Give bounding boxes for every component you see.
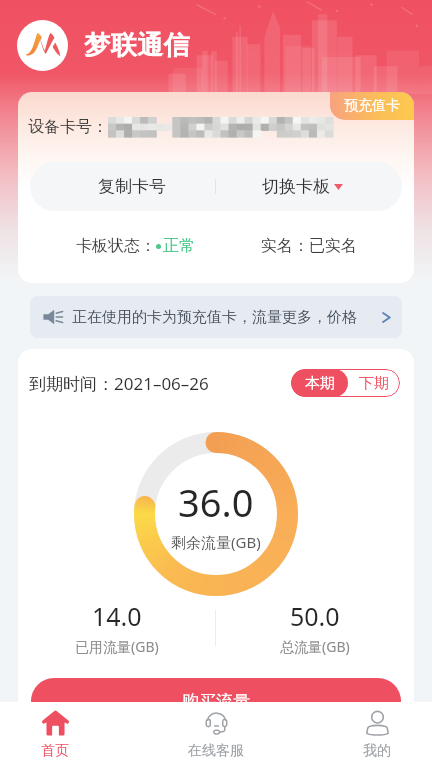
staticText: 50.0 xyxy=(290,599,340,633)
staticText: 在线客服 xyxy=(188,742,244,760)
staticText: 梦联通信 xyxy=(84,29,190,62)
staticText: 14.0 xyxy=(92,599,142,633)
button[interactable]: 切换卡板 xyxy=(216,162,402,211)
staticText: 正常 xyxy=(163,236,195,256)
button[interactable]: 我的 xyxy=(323,702,431,768)
staticText: 到期时间：2021–06–26 xyxy=(29,372,209,395)
staticText: 本期 xyxy=(305,374,335,393)
staticText: 复制卡号 xyxy=(98,176,166,197)
button[interactable]: 购买流量 xyxy=(31,678,401,724)
staticText: 切换卡板 xyxy=(262,176,330,197)
staticText: 卡板状态： xyxy=(76,236,156,256)
button[interactable]: 在线客服 xyxy=(162,702,270,768)
button[interactable]: 下期 xyxy=(348,369,400,397)
staticText: 总流量(GB) xyxy=(280,637,350,656)
staticText: 预充值卡 xyxy=(344,97,400,115)
staticText: 设备卡号： xyxy=(28,117,108,137)
button[interactable]: 首页 xyxy=(1,702,109,768)
staticText: 首页 xyxy=(41,742,69,760)
staticText: 我的 xyxy=(363,742,391,760)
staticText: 36.0 xyxy=(178,476,254,528)
button[interactable]: 正在使用的卡为预充值卡，流量更多，价格 xyxy=(30,296,402,338)
staticText: 已用流量(GB) xyxy=(75,637,159,656)
staticText: 实名：已实名 xyxy=(261,236,357,256)
staticText: 正在使用的卡为预充值卡，流量更多，价格 xyxy=(72,308,382,327)
staticText: 购买流量 xyxy=(182,691,250,712)
staticText: 剩余流量(GB) xyxy=(171,532,261,552)
button[interactable]: 复制卡号 xyxy=(30,162,215,211)
staticText: 下期 xyxy=(359,374,389,393)
button[interactable]: 本期 xyxy=(291,369,348,397)
